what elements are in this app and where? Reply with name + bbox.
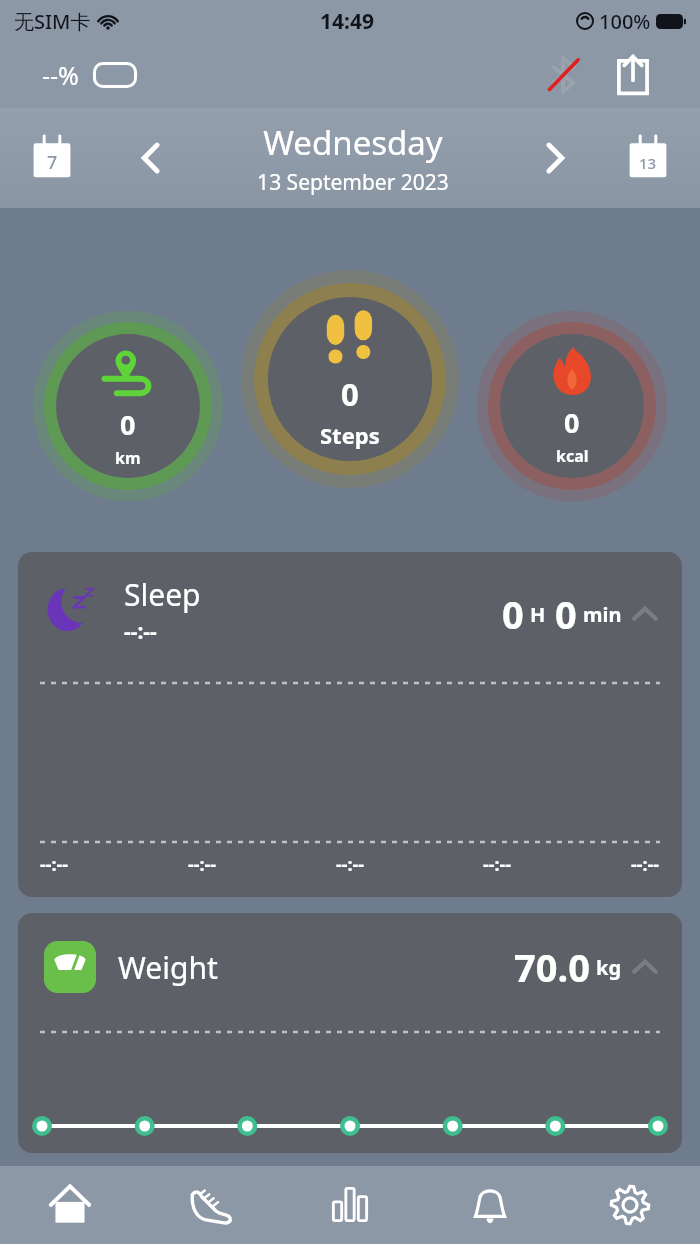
staticText: kg <box>596 954 622 981</box>
staticText: --% <box>42 58 79 92</box>
button[interactable]: 0 <box>44 322 212 490</box>
button[interactable]: Previous day <box>126 133 176 183</box>
staticText: min <box>583 601 622 628</box>
staticText: --:-- <box>631 852 660 877</box>
button[interactable]: Home <box>0 1166 140 1244</box>
staticText: H <box>530 601 546 628</box>
button[interactable]: Sleep <box>18 552 682 897</box>
staticText: Sleep <box>124 574 201 615</box>
button[interactable]: Weight <box>18 913 682 1153</box>
staticText: kcal <box>556 445 589 467</box>
staticText: Weight <box>118 947 218 988</box>
button[interactable]: Week view <box>24 130 80 186</box>
button[interactable]: Activity <box>140 1166 280 1244</box>
staticText: 0 <box>555 588 577 640</box>
button[interactable]: Share <box>608 50 658 100</box>
staticText: --:-- <box>483 852 512 877</box>
staticText: 13 September 2023 <box>257 168 449 197</box>
button[interactable]: 0 <box>254 283 446 475</box>
staticText: 0 <box>341 373 359 415</box>
staticText: 7 <box>47 150 58 175</box>
staticText: --:-- <box>336 852 365 877</box>
staticText: km <box>115 447 141 469</box>
staticText: 13 <box>639 153 657 173</box>
staticText: 14:49 <box>320 7 374 36</box>
staticText: --:-- <box>188 852 217 877</box>
button[interactable]: Next day <box>530 133 580 183</box>
button[interactable]: Alerts <box>420 1166 560 1244</box>
button[interactable]: Statistics <box>280 1166 420 1244</box>
staticText: 0 <box>120 406 136 443</box>
button[interactable]: Pick date <box>620 130 676 186</box>
staticText: Wednesday <box>263 120 443 165</box>
button[interactable]: 0 <box>488 322 656 490</box>
button[interactable]: Bluetooth off <box>540 52 586 98</box>
button[interactable]: Settings <box>560 1166 700 1244</box>
staticText: 0 <box>502 588 524 640</box>
staticText: --:-- <box>124 617 157 646</box>
staticText: --:-- <box>40 852 69 877</box>
staticText: 100% <box>599 8 651 35</box>
staticText: 无SIM卡 <box>14 8 91 35</box>
staticText: 70.0 <box>514 941 590 993</box>
staticText: 0 <box>564 404 580 441</box>
staticText: Steps <box>320 420 380 450</box>
